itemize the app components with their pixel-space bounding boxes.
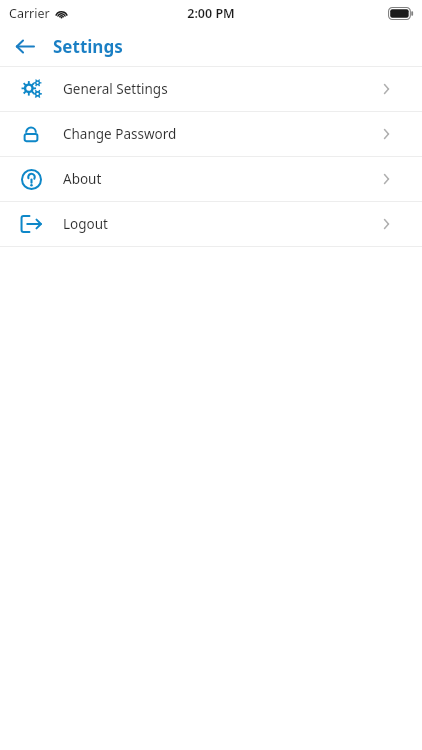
staticText: Carrier <box>9 5 50 22</box>
staticText: General Settings <box>63 80 168 98</box>
staticText: About <box>63 170 102 188</box>
button[interactable]: About <box>0 157 422 201</box>
button[interactable]: Back <box>8 30 40 62</box>
staticText: Change Password <box>63 125 177 143</box>
staticText: Settings <box>53 35 123 58</box>
staticText: 2:00 PM <box>187 5 235 22</box>
button[interactable]: Change Password <box>0 112 422 156</box>
button[interactable]: Logout <box>0 202 422 246</box>
button[interactable]: General Settings <box>0 67 422 111</box>
staticText: Logout <box>63 215 108 233</box>
